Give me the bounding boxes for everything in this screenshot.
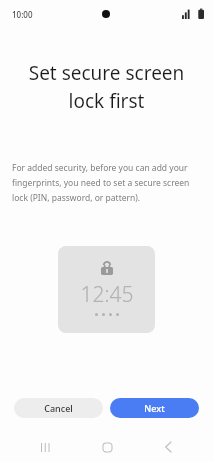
button[interactable]: Home bbox=[90, 432, 124, 462]
staticText: 12:45 bbox=[80, 280, 134, 309]
staticText: 10:00 bbox=[12, 9, 33, 20]
button[interactable]: Back bbox=[151, 432, 185, 462]
staticText: Next bbox=[144, 402, 165, 414]
button[interactable]: Next bbox=[110, 398, 199, 418]
button[interactable]: Recent apps bbox=[28, 432, 62, 462]
staticText: Set secure screen lock first bbox=[10, 60, 203, 114]
staticText: For added security, before you can add y… bbox=[12, 162, 199, 203]
button[interactable]: Cancel bbox=[14, 398, 103, 418]
staticText: Cancel bbox=[44, 402, 73, 414]
